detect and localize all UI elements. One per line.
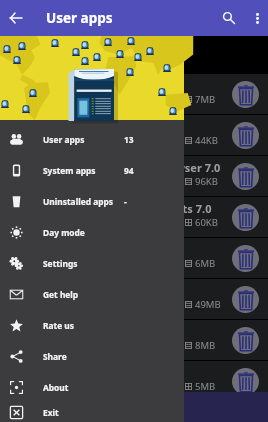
- staticText: User apps: [43, 134, 85, 145]
- staticText: 7MB: [195, 93, 216, 106]
- button[interactable]: File Manager: [0, 238, 268, 278]
- button[interactable]: Uninstall: [232, 204, 259, 231]
- button[interactable]: System apps: [0, 155, 184, 186]
- button[interactable]: Get help: [0, 279, 184, 310]
- button[interactable]: Photo Gallery Editing 2.0: [0, 115, 268, 155]
- button[interactable]: Uninstall: [232, 368, 259, 395]
- button[interactable]: Uninstall: [232, 163, 259, 190]
- staticText: Uninstalled apps: [43, 196, 113, 207]
- button[interactable]: Messages: [0, 361, 268, 401]
- staticText: About: [43, 382, 69, 393]
- button[interactable]: Uninstalled apps: [0, 186, 184, 217]
- button[interactable]: About: [0, 372, 184, 403]
- button[interactable]: Share: [0, 341, 184, 372]
- button[interactable]: Android System Webbrowser 7.0: [0, 156, 268, 196]
- staticText: User apps: [46, 9, 113, 27]
- button[interactable]: Music Player: [0, 279, 268, 319]
- staticText: 6MB: [195, 257, 216, 270]
- button[interactable]: Uninstall: [232, 327, 259, 354]
- button[interactable]: More options: [246, 0, 268, 36]
- staticText: Exit: [43, 407, 59, 418]
- button[interactable]: Dictionary: [0, 74, 268, 114]
- staticText: Gallery: [44, 324, 83, 339]
- staticText: Day mode: [43, 227, 85, 238]
- button[interactable]: Exit: [0, 403, 184, 422]
- button[interactable]: Back: [0, 0, 32, 36]
- staticText: Android System Webbrowser 7.0: [44, 160, 221, 175]
- button[interactable]: User apps: [0, 124, 184, 155]
- staticText: 5MB: [195, 380, 216, 393]
- staticText: Settings: [43, 258, 78, 269]
- staticText: 44KB: [195, 134, 218, 147]
- staticText: 96KB: [195, 175, 218, 188]
- button[interactable]: Uninstall: [232, 81, 259, 108]
- staticText: -: [124, 196, 127, 207]
- staticText: 8MB: [195, 339, 216, 352]
- staticText: Share: [43, 351, 67, 362]
- staticText: Phone Dialer with Contacts 7.0: [44, 201, 212, 216]
- staticText: Rate us: [43, 320, 75, 331]
- staticText: Dictionary: [44, 78, 101, 93]
- button[interactable]: Uninstall: [232, 245, 259, 272]
- button[interactable]: Day mode: [0, 217, 184, 248]
- button[interactable]: Uninstall: [232, 122, 259, 149]
- button[interactable]: Gallery: [0, 320, 268, 360]
- staticText: Get help: [43, 289, 79, 300]
- button[interactable]: Settings: [0, 248, 184, 279]
- staticText: 60KB: [195, 216, 218, 229]
- staticText: System apps: [43, 165, 96, 176]
- staticText: Photo Gallery Editing 2.0: [44, 119, 179, 134]
- staticText: 94: [124, 165, 134, 176]
- button[interactable]: Phone Dialer with Contacts 7.0: [0, 197, 268, 237]
- button[interactable]: Rate us: [0, 310, 184, 341]
- staticText: 13: [124, 134, 134, 145]
- staticText: Music Player: [44, 283, 114, 298]
- button[interactable]: Search: [212, 0, 246, 36]
- staticText: 49MB: [195, 298, 221, 311]
- button[interactable]: Uninstall: [232, 286, 259, 313]
